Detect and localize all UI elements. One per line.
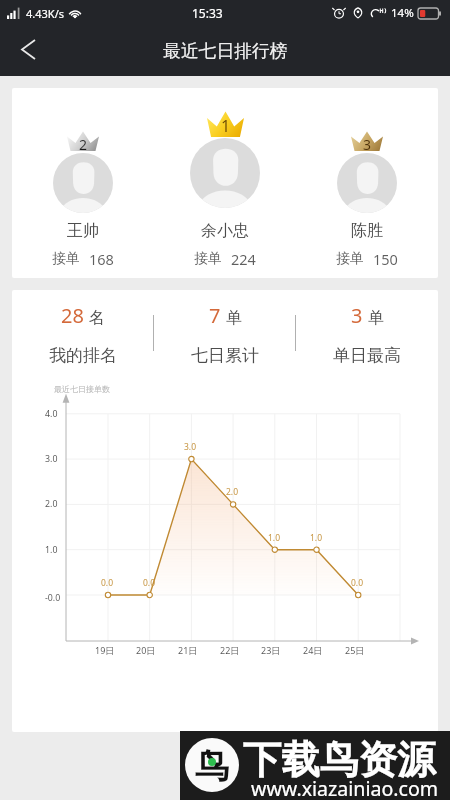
- staticText: 3.0: [184, 441, 197, 453]
- staticText: 最近七日排行榜: [163, 40, 288, 62]
- staticText: 2.0: [45, 498, 58, 510]
- staticText: 19日: [95, 644, 115, 656]
- staticText: 22日: [220, 644, 240, 656]
- button[interactable]: 3: [296, 88, 438, 278]
- staticText: 接单: [336, 250, 364, 268]
- staticText: 14%: [391, 5, 414, 21]
- staticText: 下载鸟资源: [243, 736, 436, 785]
- staticText: 王帅: [67, 221, 99, 241]
- staticText: 陈胜: [351, 221, 383, 241]
- staticText: 余小忠: [201, 221, 249, 241]
- button[interactable]: 7: [154, 290, 296, 374]
- staticText: 最近七日接单数: [54, 384, 110, 394]
- staticText: 1.0: [310, 532, 323, 544]
- staticText: 21日: [178, 644, 198, 656]
- staticText: 3: [351, 302, 363, 329]
- staticText: 15:33: [192, 5, 223, 21]
- staticText: 0.0: [143, 577, 156, 589]
- staticText: 168: [89, 249, 114, 269]
- staticText: 28: [61, 302, 84, 329]
- staticText: 单: [368, 308, 384, 328]
- button[interactable]: 1: [154, 88, 296, 278]
- staticText: www.xiazainiao.com: [251, 775, 439, 800]
- staticText: 23日: [261, 644, 281, 656]
- staticText: 接单: [194, 250, 222, 268]
- staticText: 2.0: [226, 486, 239, 498]
- staticText: 24日: [303, 644, 323, 656]
- staticText: 20日: [136, 644, 156, 656]
- staticText: 1.0: [268, 532, 281, 544]
- staticText: -0.0: [45, 592, 61, 604]
- button[interactable]: 2: [12, 88, 154, 278]
- staticText: 3.0: [45, 453, 58, 465]
- staticText: 4.43K/s: [26, 6, 64, 21]
- staticText: 单: [226, 308, 242, 328]
- button[interactable]: Back: [10, 31, 47, 68]
- staticText: 1: [221, 115, 231, 137]
- staticText: 4.0: [45, 408, 58, 420]
- button[interactable]: 28: [12, 290, 154, 374]
- staticText: 25日: [345, 644, 365, 656]
- staticText: 七日累计: [191, 345, 259, 366]
- staticText: 224: [231, 249, 256, 269]
- staticText: 接单: [52, 250, 80, 268]
- staticText: 0.0: [351, 577, 364, 589]
- staticText: 0.0: [101, 577, 114, 589]
- staticText: 单日最高: [333, 345, 401, 366]
- staticText: 150: [373, 249, 398, 269]
- staticText: 名: [89, 308, 105, 328]
- staticText: 鸟: [195, 745, 229, 788]
- staticText: 1.0: [45, 544, 58, 556]
- staticText: 2: [79, 135, 88, 154]
- staticText: 7: [209, 302, 221, 329]
- button[interactable]: 3: [296, 290, 438, 374]
- staticText: 3: [363, 135, 372, 154]
- staticText: 我的排名: [49, 345, 117, 366]
